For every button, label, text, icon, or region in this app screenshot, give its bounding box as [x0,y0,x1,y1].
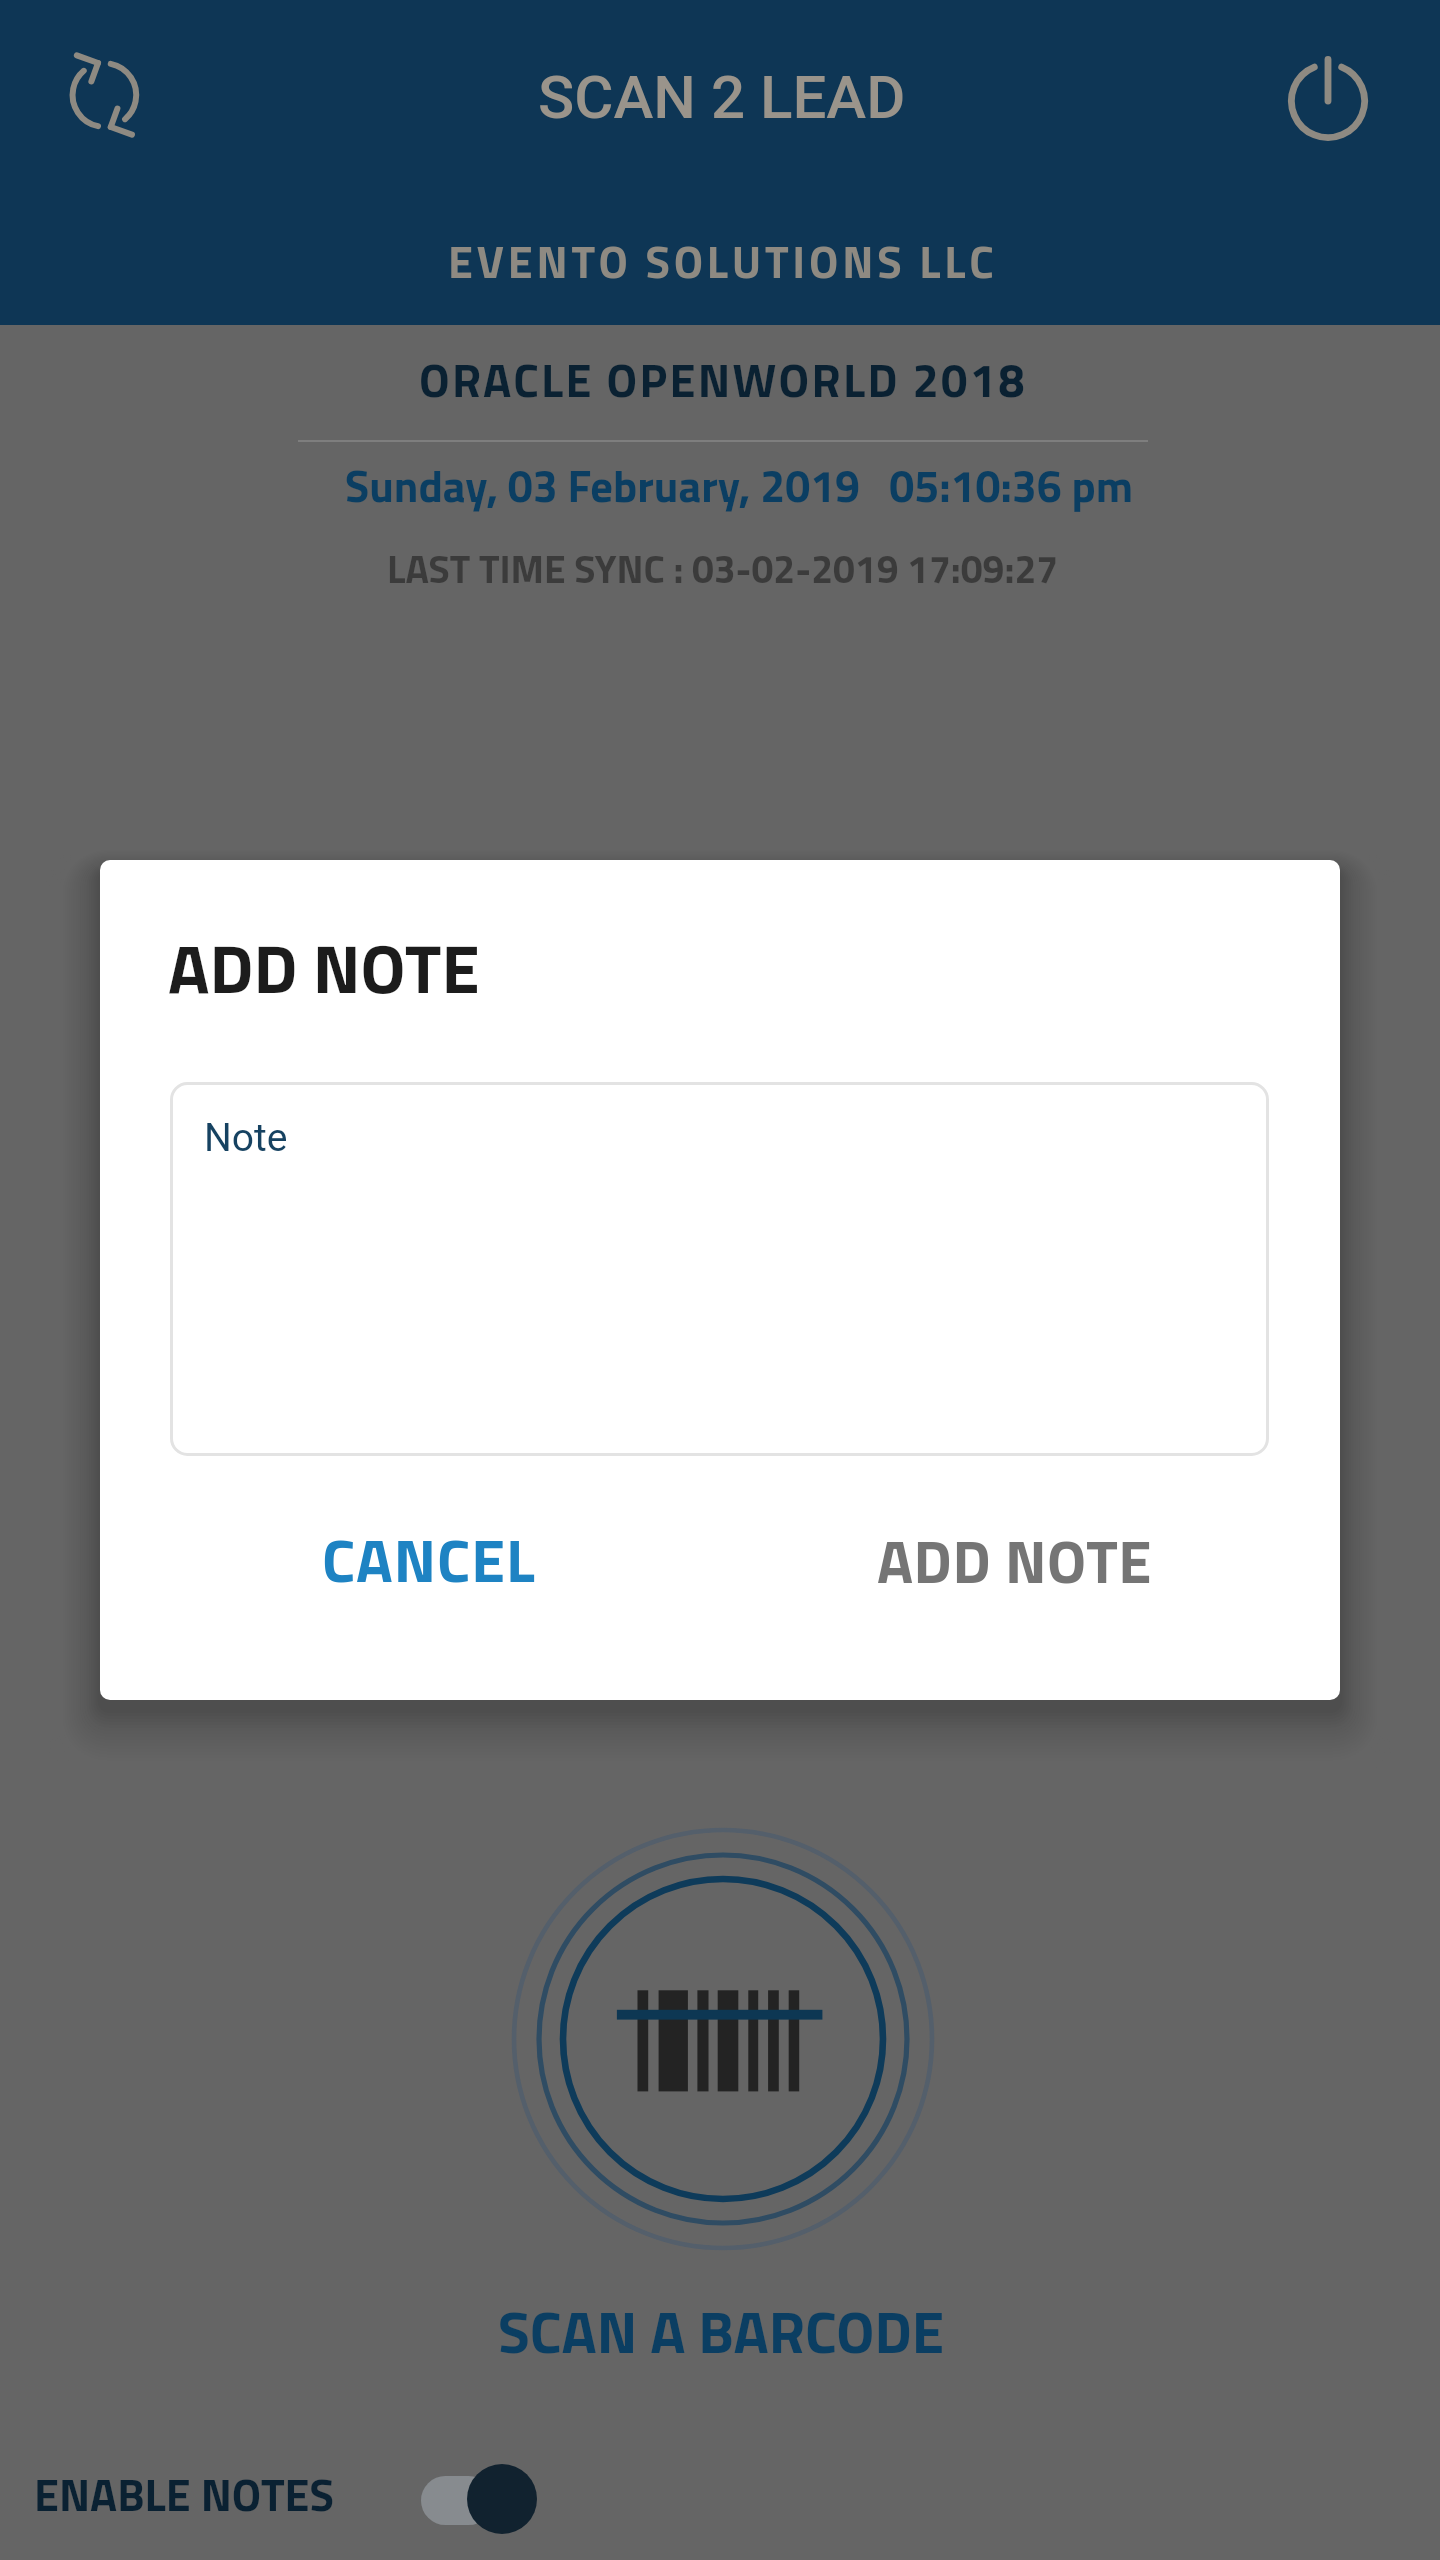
staticText: CANCEL [322,1513,536,1606]
staticText: ORACLE OPENWORLD 2018 [419,344,1027,415]
staticText: EVENTO SOLUTIONS LLC [448,227,998,295]
staticText: SCAN 2 LEAD [538,62,906,132]
button[interactable]: Note [170,1082,1269,1456]
staticText: LAST TIME SYNC : 03-02-2019 17:09:27 [387,539,1059,598]
button[interactable]: Sync [55,42,161,148]
button[interactable]: ADD NOTE [847,1499,1182,1622]
button[interactable]: Power [1283,56,1373,146]
staticText: ADD NOTE [168,915,480,1020]
staticText: ADD NOTE [877,1515,1152,1606]
button[interactable]: CANCEL [292,1497,566,1622]
staticText: Note [204,1115,288,1161]
staticText: SCAN A BARCODE [498,2287,945,2376]
button[interactable]: Enable notes [415,2460,545,2544]
staticText: ENABLE NOTES [34,2460,334,2528]
staticText: Sunday, 03 February, 2019 05:10:36 pm [345,452,1134,520]
button[interactable]: Scan a barcode [508,1824,938,2254]
